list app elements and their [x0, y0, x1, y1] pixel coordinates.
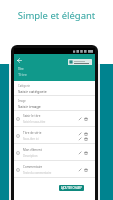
staticText: Titre de série — [23, 131, 42, 135]
button[interactable]: Edit — [78, 168, 82, 172]
staticText: Titre — [18, 72, 27, 78]
staticText: Description — [23, 154, 38, 158]
button[interactable]: Get it on Google Play — [68, 59, 92, 65]
button[interactable]: AJOUTER CHAMP — [59, 185, 84, 191]
staticText: Titre — [18, 67, 24, 71]
staticText: AJOUTER CHAMP — [61, 186, 82, 190]
staticText: Saisir catégorie — [18, 89, 47, 94]
staticText: Catégorie — [18, 84, 30, 88]
button[interactable]: Delete — [84, 137, 88, 141]
button[interactable]: Delete — [84, 168, 88, 172]
staticText: Saisir le titre — [23, 114, 41, 118]
staticText: Image — [18, 99, 26, 103]
button[interactable]: Edit — [78, 151, 82, 155]
button[interactable]: Catégorie — [14, 81, 95, 96]
button[interactable]: Saisir le titre — [14, 111, 95, 127]
button[interactable]: Mon élément — [14, 144, 95, 161]
button[interactable]: Delete — [84, 132, 88, 136]
staticText: Saisir image — [18, 104, 41, 109]
button[interactable]: Image — [14, 96, 95, 111]
button[interactable]: Edit — [78, 117, 82, 121]
staticText: Sous-titre ici — [23, 137, 39, 141]
staticText: Commentaire — [23, 165, 43, 169]
staticText: Mon élément — [23, 148, 42, 152]
staticText: Simple et élégant — [0, 9, 113, 22]
button[interactable]: Back — [16, 57, 23, 64]
staticText: Texte du commentaire — [23, 171, 52, 175]
button[interactable]: Commentaire — [14, 161, 95, 178]
button[interactable]: Delete — [84, 151, 88, 155]
button[interactable]: Delete — [84, 117, 88, 121]
button[interactable]: Edit — [78, 137, 82, 141]
button[interactable]: Titre de série — [14, 127, 95, 144]
button[interactable]: Edit — [78, 132, 82, 136]
staticText: Saisir le sous-titre — [23, 120, 46, 124]
